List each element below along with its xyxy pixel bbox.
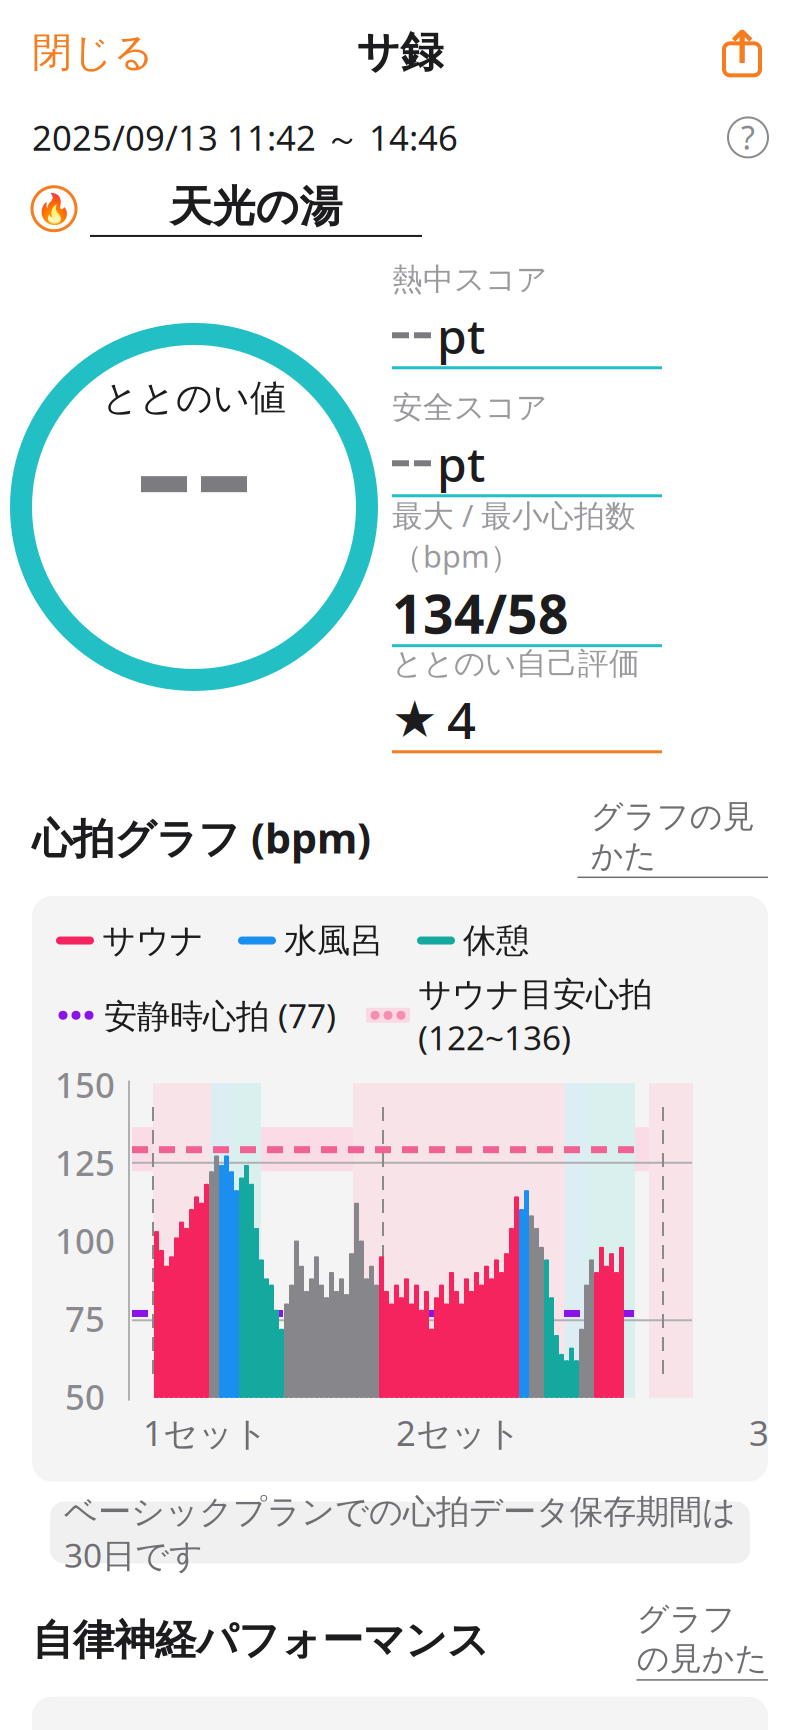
button[interactable]: グラフの見かた — [577, 797, 768, 878]
staticText: グラフの見かた — [637, 1600, 768, 1678]
staticText: 134/58 — [392, 578, 569, 649]
staticText: 水風呂 — [284, 920, 383, 961]
staticText: 100 — [55, 1217, 115, 1263]
staticText: 125 — [55, 1139, 115, 1185]
staticText: 150 — [55, 1061, 115, 1107]
staticText: pt — [437, 431, 485, 495]
staticText: サウナ目安心拍 (122~136) — [418, 971, 652, 1059]
staticText: 安静時心拍 (77) — [104, 993, 336, 1037]
staticText: ? — [741, 116, 755, 159]
staticText: グラフの見かた — [591, 797, 755, 875]
staticText: 2025/09/13 11:42 ～ 14:46 — [32, 114, 458, 160]
button[interactable]: 天光の湯 — [90, 180, 422, 237]
staticText: サウナ — [102, 920, 204, 961]
staticText: 50 — [65, 1373, 105, 1419]
staticText: ★ — [392, 690, 437, 748]
staticText: ととのい自己評価 — [392, 645, 640, 682]
staticText: 心拍グラフ (bpm) — [32, 810, 371, 865]
staticText: pt — [437, 303, 485, 367]
staticText: 4 — [447, 686, 476, 753]
staticText: 75 — [65, 1295, 105, 1341]
staticText: 🔥 — [35, 192, 72, 225]
staticText: 自律神経パフォーマンス — [32, 1615, 489, 1665]
button[interactable]: 閉じる — [32, 18, 154, 87]
staticText: 休憩 — [463, 920, 529, 961]
staticText: 最大 / 最小心拍数（bpm） — [392, 495, 636, 576]
staticText: ととのい値 — [102, 376, 286, 420]
staticText: 熱中スコア — [392, 261, 547, 298]
staticText: ベーシックプランでの心拍データ保存期間は 30日です — [64, 1488, 736, 1577]
button[interactable]: ヘルプ — [728, 117, 768, 157]
staticText: 安全スコア — [392, 389, 547, 426]
staticText: 天光の湯 — [169, 180, 342, 233]
staticText: サ録 — [356, 26, 443, 78]
staticText: 2セット — [396, 1409, 521, 1455]
staticText: 閉じる — [32, 28, 154, 77]
staticText: ↑ — [723, 22, 761, 73]
staticText: 1セット — [143, 1409, 268, 1455]
staticText: 3 — [749, 1409, 769, 1455]
button[interactable]: グラフの見かた — [636, 1600, 768, 1681]
button[interactable]: 共有 — [716, 26, 768, 78]
